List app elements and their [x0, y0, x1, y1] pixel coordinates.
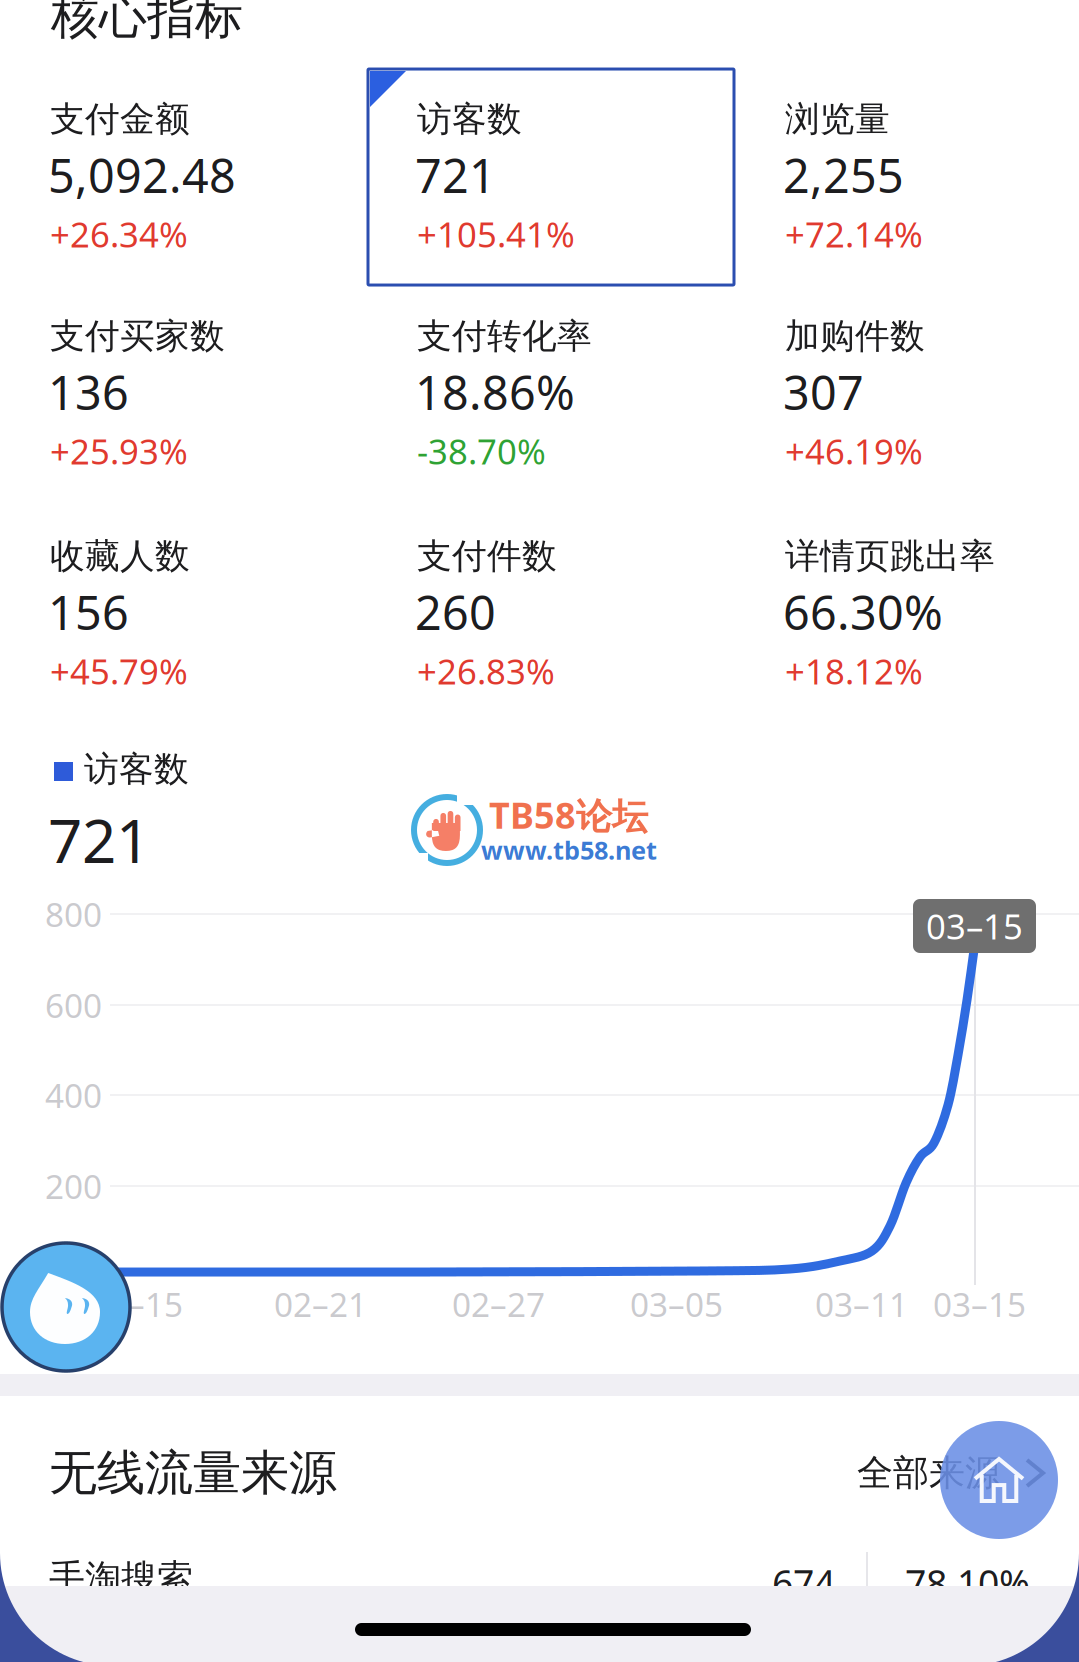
- staticText: +46.19%: [785, 428, 923, 474]
- staticText: 浏览量: [785, 98, 890, 141]
- staticText: -38.70%: [417, 428, 546, 474]
- staticText: 400: [45, 1073, 102, 1117]
- staticText: 访客数: [84, 748, 189, 791]
- staticText: 02–21: [274, 1282, 367, 1326]
- button[interactable]: 智能助手: [2, 1243, 130, 1371]
- staticText: 307: [783, 361, 864, 423]
- staticText: 78.10%: [905, 1558, 1030, 1608]
- staticText: +18.12%: [785, 648, 923, 694]
- staticText: 260: [415, 581, 496, 643]
- staticText: 18.86%: [415, 361, 575, 423]
- staticText: +26.34%: [50, 211, 188, 257]
- staticText: 核心指标: [51, 0, 243, 46]
- staticText: 600: [45, 983, 102, 1027]
- staticText: 2,255: [783, 144, 904, 206]
- staticText: 66.30%: [783, 581, 943, 643]
- staticText: –15: [128, 1282, 183, 1326]
- staticText: +105.41%: [417, 211, 575, 257]
- staticText: 03–11: [815, 1282, 908, 1326]
- staticText: 800: [45, 892, 102, 936]
- staticText: 详情页跳出率: [785, 535, 995, 578]
- staticText: 无线流量来源: [49, 1443, 337, 1502]
- staticText: 721: [415, 144, 496, 206]
- staticText: 支付买家数: [50, 315, 225, 358]
- staticText: +26.83%: [417, 648, 555, 694]
- staticText: +45.79%: [50, 648, 188, 694]
- staticText: +25.93%: [50, 428, 188, 474]
- staticText: 支付件数: [417, 535, 557, 578]
- staticText: 200: [45, 1164, 102, 1208]
- staticText: 访客数: [417, 98, 522, 141]
- staticText: 5,092.48: [48, 144, 236, 206]
- staticText: 03–15: [926, 903, 1023, 949]
- staticText: 674: [772, 1558, 835, 1608]
- staticText: +72.14%: [785, 211, 923, 257]
- staticText: 02–27: [452, 1282, 545, 1326]
- staticText: 支付转化率: [417, 315, 592, 358]
- staticText: 加购件数: [785, 315, 925, 358]
- staticText: 03–15: [933, 1282, 1026, 1326]
- staticText: 支付金额: [50, 98, 190, 141]
- staticText: 136: [48, 361, 129, 423]
- staticText: 721: [48, 800, 150, 880]
- staticText: 156: [48, 581, 129, 643]
- staticText: TB58论坛: [489, 791, 648, 839]
- button[interactable]: 首页: [940, 1421, 1058, 1539]
- staticText: 收藏人数: [50, 535, 190, 578]
- staticText: 手淘搜索: [49, 1556, 193, 1600]
- staticText: 全部来源: [857, 1451, 1001, 1495]
- staticText: www.tb58.net: [481, 833, 657, 867]
- button[interactable]: 无线流量来源: [49, 1418, 1045, 1528]
- staticText: 03–05: [630, 1282, 723, 1326]
